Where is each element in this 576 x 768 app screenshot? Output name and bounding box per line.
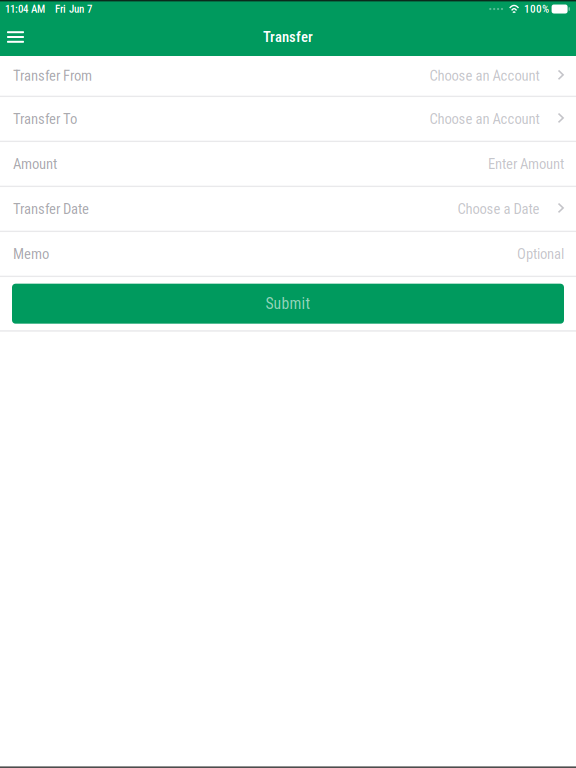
- button[interactable]: Memo: [0, 232, 576, 277]
- button[interactable]: Transfer From: [0, 56, 576, 97]
- staticText: Fri Jun 7: [55, 3, 92, 15]
- button[interactable]: Menu: [0, 18, 31, 56]
- staticText: Choose an Account: [430, 67, 540, 84]
- staticText: Optional: [517, 245, 564, 263]
- staticText: Transfer Date: [13, 200, 89, 218]
- staticText: Choose a Date: [458, 200, 540, 218]
- staticText: Submit: [265, 294, 310, 313]
- staticText: 11:04 AM: [5, 3, 45, 15]
- button[interactable]: Transfer To: [0, 97, 576, 142]
- staticText: Enter Amount: [488, 155, 564, 173]
- staticText: 100%: [524, 2, 549, 16]
- staticText: Transfer From: [13, 67, 92, 84]
- staticText: Choose an Account: [430, 110, 540, 128]
- staticText: Memo: [13, 245, 49, 263]
- button[interactable]: Submit: [12, 284, 564, 324]
- button[interactable]: Transfer Date: [0, 187, 576, 232]
- staticText: Transfer: [263, 28, 313, 46]
- button[interactable]: Amount: [0, 142, 576, 187]
- staticText: Transfer To: [13, 110, 77, 128]
- staticText: Amount: [13, 155, 57, 173]
